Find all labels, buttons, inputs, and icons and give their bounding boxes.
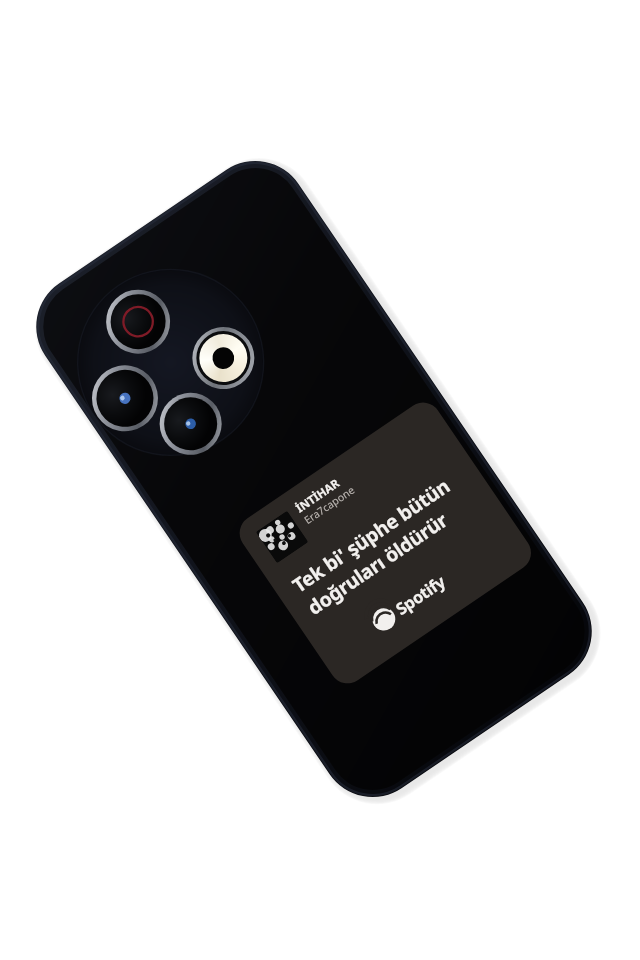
button[interactable]: Spotify lyrics share card xyxy=(162,343,464,637)
button[interactable]: Camera module xyxy=(41,208,305,472)
